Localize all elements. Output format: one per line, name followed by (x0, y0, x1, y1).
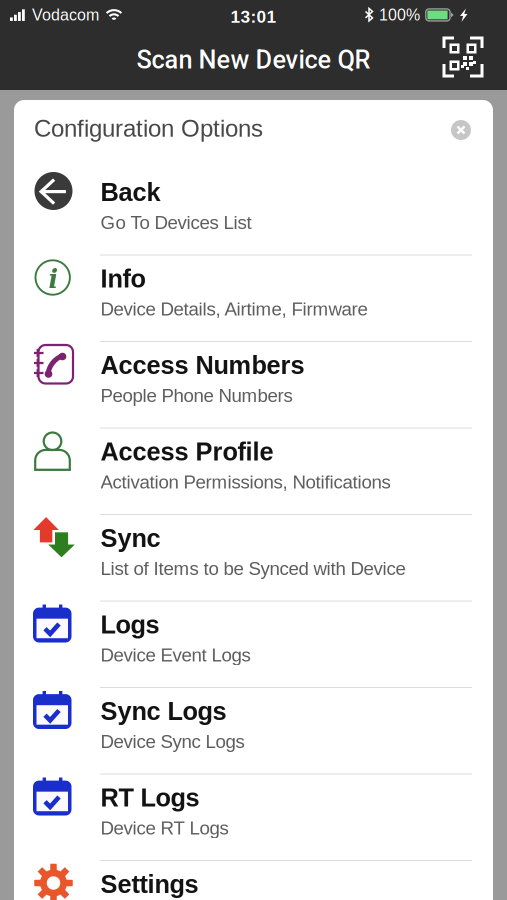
staticText: Device Sync Logs (100, 731, 244, 752)
button[interactable]: Sync Logs (14, 687, 493, 773)
staticText: i (48, 264, 58, 294)
button[interactable]: Close (444, 113, 478, 147)
button[interactable]: Logs (14, 600, 493, 687)
button[interactable]: Access Numbers (14, 341, 493, 427)
staticText: People Phone Numbers (100, 385, 292, 406)
staticText: Activation Permissions, Notifications (100, 471, 390, 492)
staticText: Go To Devices List (100, 212, 251, 233)
button[interactable]: Sync (14, 514, 493, 600)
staticText: Scan New Device QR (136, 45, 370, 75)
staticText: List of Items to be Synced with Device (100, 558, 405, 579)
staticText: Access Profile (100, 437, 273, 466)
staticText: Device RT Logs (100, 817, 228, 838)
staticText: Access Numbers (100, 351, 304, 379)
button[interactable]: Back (14, 168, 493, 254)
button[interactable]: i (14, 254, 493, 341)
staticText: Sync Logs (100, 697, 226, 725)
staticText: 100% (379, 6, 420, 24)
staticText: Info (100, 264, 145, 293)
button[interactable]: Settings (14, 860, 493, 900)
staticText: Configuration Options (34, 115, 263, 142)
staticText: Device Event Logs (100, 644, 250, 665)
staticText: Sync (100, 524, 160, 552)
button[interactable]: Scan QR code (435, 31, 491, 83)
staticText: Vodacom (32, 6, 99, 24)
staticText: Back (100, 178, 160, 206)
button[interactable]: RT Logs (14, 773, 493, 860)
staticText: 13:01 (230, 7, 276, 26)
staticText: Logs (100, 610, 159, 639)
button[interactable]: Access Profile (14, 427, 493, 514)
staticText: Settings (100, 870, 198, 898)
staticText: Device Details, Airtime, Firmware (100, 298, 367, 319)
staticText: RT Logs (100, 783, 199, 812)
